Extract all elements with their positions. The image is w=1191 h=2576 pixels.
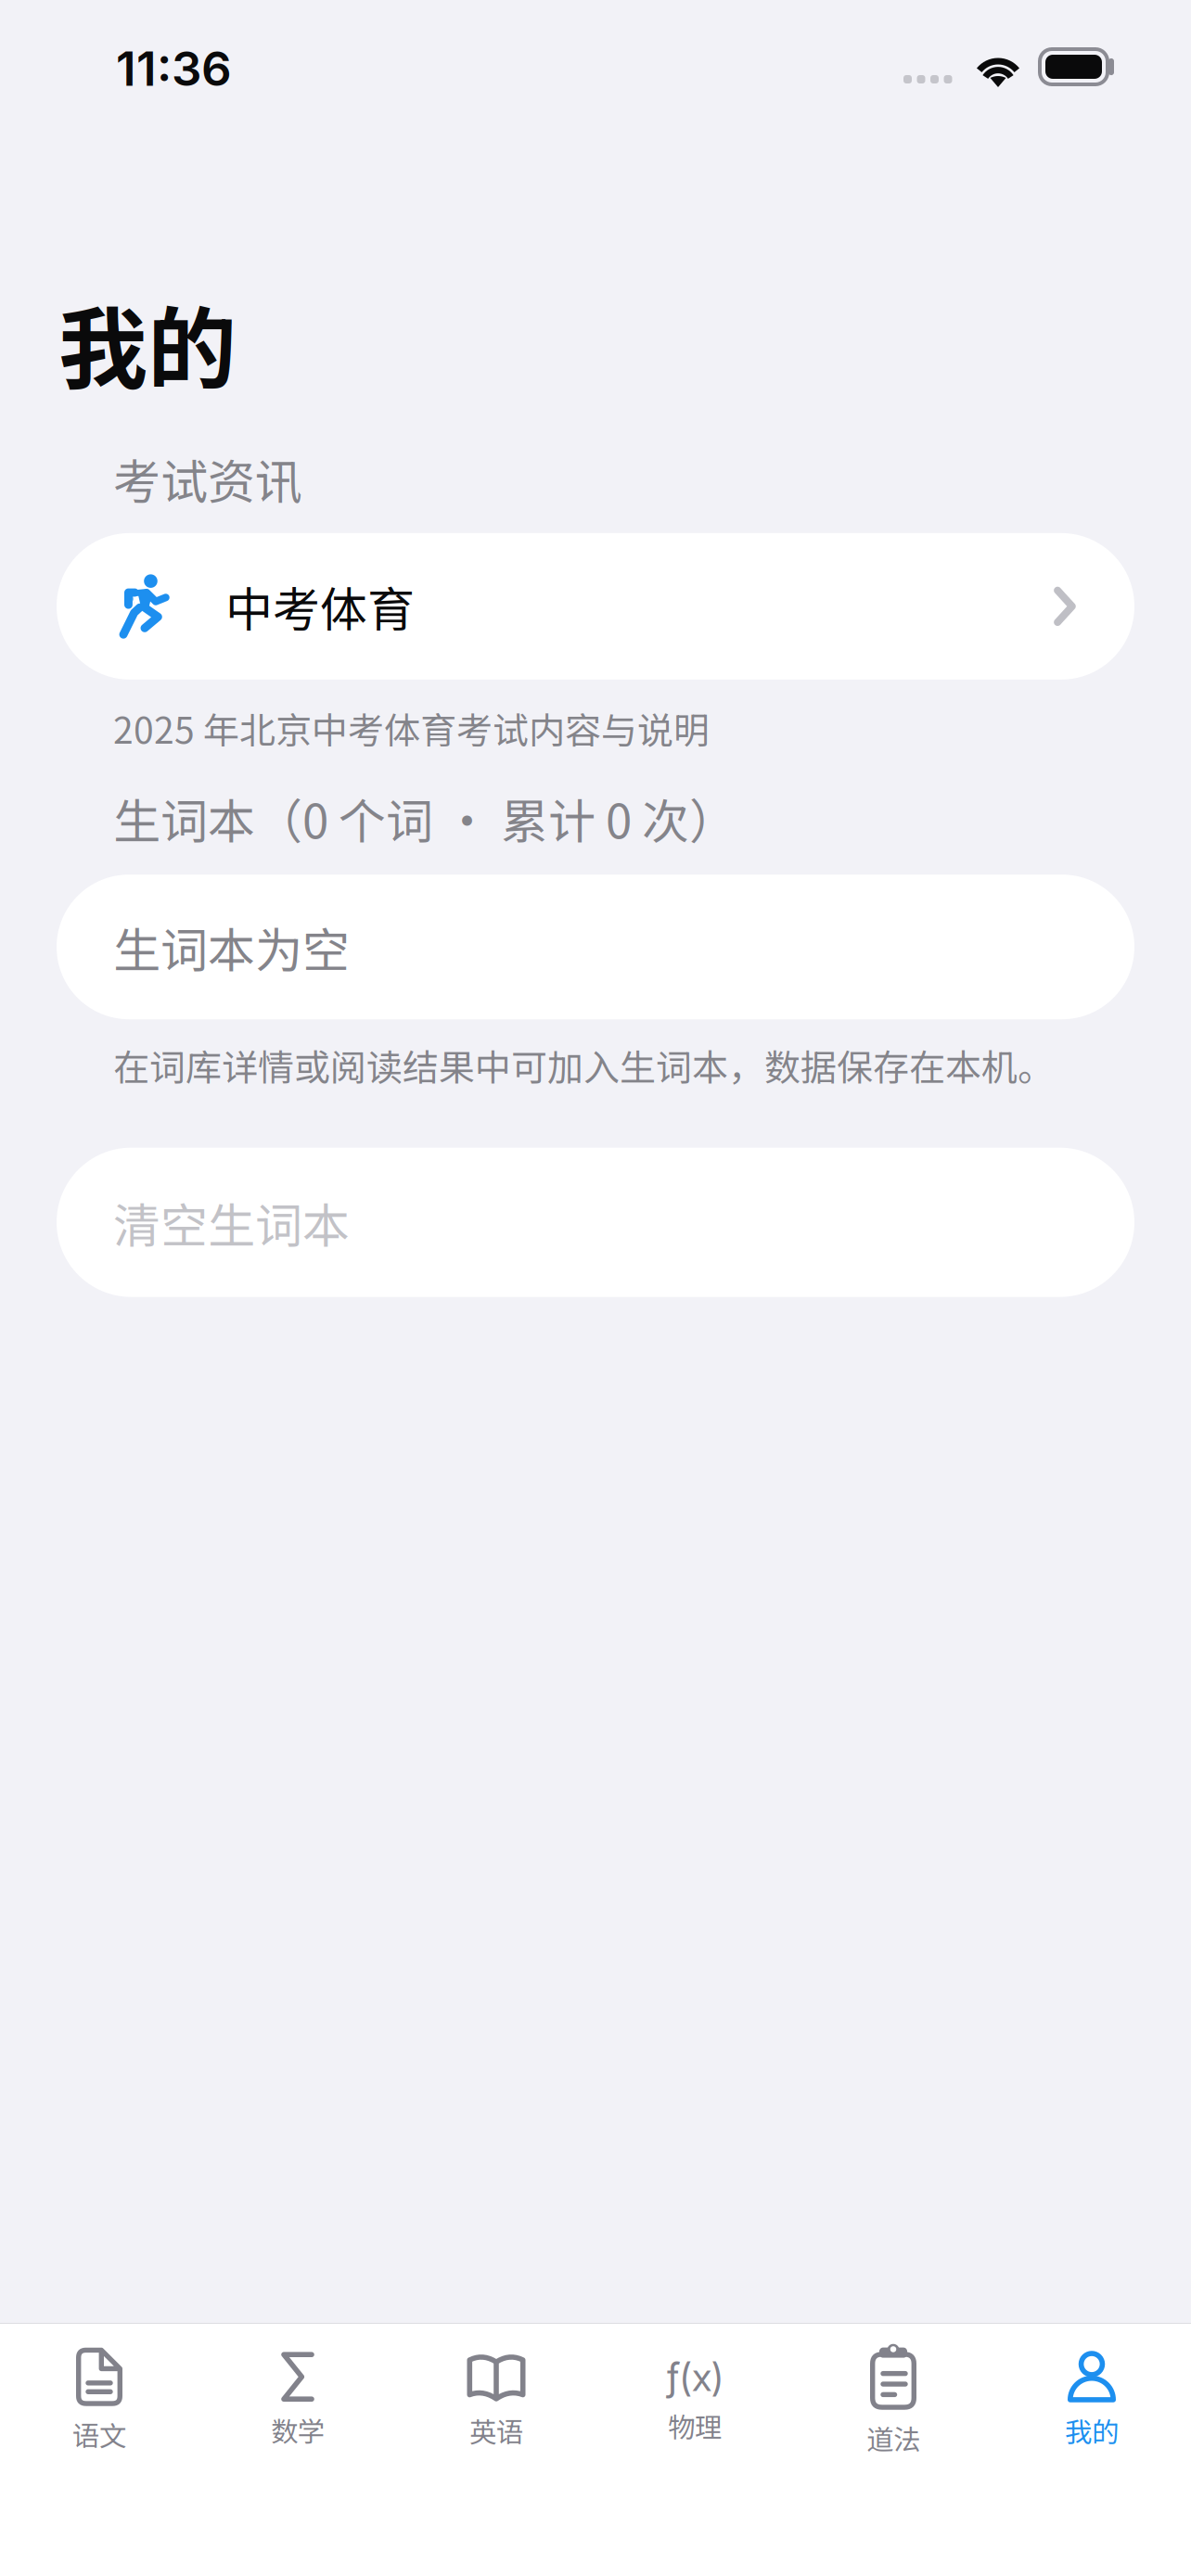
staticText: 我的: [58, 278, 237, 407]
staticText: 在词库详情或阅读结果中可加入生词本，数据保存在本机。: [113, 1039, 1054, 1091]
button[interactable]: 英语: [397, 2351, 595, 2450]
button[interactable]: ƒ(x): [595, 2356, 794, 2446]
staticText: 语文: [72, 2414, 126, 2454]
staticText: 数学: [271, 2410, 325, 2450]
staticText: 清空生词本: [113, 1188, 350, 1256]
button[interactable]: 清空生词本: [57, 1148, 1134, 1297]
staticText: 物理: [668, 2406, 722, 2446]
staticText: 考试资讯: [113, 444, 302, 513]
staticText: 中考体育: [225, 572, 415, 640]
staticText: 生词本（0 个词 · 累计 0 次）: [113, 784, 736, 852]
staticText: 生词本为空: [113, 913, 350, 981]
staticText: 2025 年北京中考体育考试内容与说明: [113, 702, 710, 754]
staticText: 英语: [469, 2411, 523, 2450]
button[interactable]: 我的: [992, 2351, 1191, 2450]
button[interactable]: 数学: [198, 2352, 397, 2450]
button[interactable]: 道法: [794, 2344, 992, 2458]
staticText: 我的: [1065, 2411, 1119, 2450]
staticText: 道法: [866, 2418, 920, 2458]
staticText: 11:36: [116, 40, 232, 97]
button[interactable]: 语文: [0, 2348, 198, 2454]
button[interactable]: 中考体育: [57, 533, 1134, 680]
staticText: ƒ(x): [666, 2353, 724, 2400]
